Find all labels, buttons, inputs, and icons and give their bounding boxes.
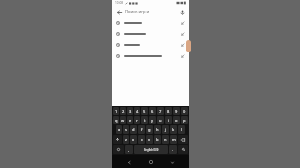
button[interactable]: u xyxy=(157,116,164,124)
staticText: 3 xyxy=(129,109,132,114)
staticText: Поиск игр и приложений xyxy=(125,9,176,15)
staticText: English (US) xyxy=(144,148,159,152)
staticText: 0 xyxy=(183,109,186,114)
staticText: q xyxy=(115,118,118,123)
button[interactable]: r xyxy=(134,116,140,124)
button[interactable]: j xyxy=(162,125,169,134)
button[interactable]: , xyxy=(125,145,133,154)
button[interactable]: Insert suggestion xyxy=(112,28,189,39)
button[interactable]: Recent apps xyxy=(167,157,177,167)
staticText: b xyxy=(156,137,159,142)
button[interactable]: h xyxy=(154,125,161,134)
button[interactable]: Insert suggestion xyxy=(112,17,189,28)
staticText: , xyxy=(128,147,130,152)
button[interactable]: c xyxy=(138,135,145,144)
button[interactable]: Back xyxy=(115,8,123,16)
staticText: n xyxy=(164,137,167,142)
staticText: t xyxy=(144,118,146,123)
button[interactable]: Back xyxy=(124,157,134,167)
staticText: l xyxy=(181,127,183,132)
staticText: k xyxy=(172,127,175,132)
button[interactable]: Поиск игр и приложений xyxy=(125,9,176,15)
button[interactable]: English (US) xyxy=(134,145,168,154)
button[interactable]: w xyxy=(120,116,126,124)
staticText: h xyxy=(156,127,159,132)
button[interactable]: . xyxy=(169,145,177,154)
button[interactable]: s xyxy=(123,125,129,134)
button[interactable]: y xyxy=(149,116,156,124)
button[interactable]: q xyxy=(113,116,119,124)
button[interactable]: 1 xyxy=(113,107,119,115)
other: Insert suggestion xyxy=(181,54,185,58)
staticText: g xyxy=(148,127,151,132)
button[interactable]: Home xyxy=(146,157,156,167)
other: Insert suggestion xyxy=(181,21,185,25)
staticText: 5 xyxy=(143,109,146,114)
button[interactable]: g xyxy=(146,125,153,134)
button[interactable]: e xyxy=(127,116,133,124)
button[interactable]: 0 xyxy=(181,107,188,115)
button[interactable]: n xyxy=(162,135,169,144)
button[interactable]: 3 xyxy=(127,107,133,115)
button[interactable]: k xyxy=(170,125,177,134)
staticText: w xyxy=(121,118,125,123)
staticText: d xyxy=(132,127,135,132)
button[interactable]: 9 xyxy=(173,107,180,115)
staticText: 1 xyxy=(115,109,118,114)
staticText: o xyxy=(175,118,178,123)
staticText: 10:08 xyxy=(115,1,124,5)
button[interactable]: 8 xyxy=(165,107,172,115)
staticText: v xyxy=(148,137,151,142)
button[interactable]: a xyxy=(116,125,122,134)
button[interactable]: 7 xyxy=(157,107,164,115)
button[interactable]: Voice search xyxy=(178,8,186,16)
staticText: f xyxy=(141,127,143,132)
button[interactable]: p xyxy=(181,116,188,124)
staticText: p xyxy=(183,118,186,123)
button[interactable]: b xyxy=(154,135,161,144)
button[interactable]: 5 xyxy=(141,107,148,115)
button[interactable]: backspace xyxy=(178,135,188,144)
staticText: 8 xyxy=(167,109,170,114)
staticText: 2 xyxy=(122,109,125,114)
button[interactable]: search xyxy=(178,145,188,154)
button[interactable]: x xyxy=(130,135,137,144)
button[interactable]: m xyxy=(170,135,177,144)
button[interactable]: 6 xyxy=(149,107,156,115)
staticText: 4 xyxy=(136,109,139,114)
other: Insert suggestion xyxy=(181,43,185,47)
other: Insert suggestion xyxy=(181,32,185,36)
button[interactable]: v xyxy=(146,135,153,144)
button[interactable]: t xyxy=(141,116,148,124)
staticText: u xyxy=(159,118,162,123)
staticText: . xyxy=(172,147,174,152)
button[interactable]: Insert suggestion xyxy=(112,50,189,61)
staticText: 6 xyxy=(151,109,154,114)
button[interactable]: emoji xyxy=(113,145,124,154)
staticText: s xyxy=(125,127,127,132)
staticText: x xyxy=(132,137,135,142)
staticText: m xyxy=(172,137,176,142)
staticText: a xyxy=(118,127,121,132)
staticText: i xyxy=(168,118,170,123)
staticText: z xyxy=(125,137,127,142)
staticText: j xyxy=(165,127,167,132)
button[interactable]: f xyxy=(138,125,145,134)
staticText: 7 xyxy=(159,109,162,114)
staticText: r xyxy=(136,118,138,123)
staticText: e xyxy=(129,118,132,123)
button[interactable]: Insert suggestion xyxy=(112,39,189,50)
staticText: c xyxy=(141,137,143,142)
button[interactable]: 4 xyxy=(134,107,140,115)
button[interactable]: shift xyxy=(113,135,122,144)
staticText: 9 xyxy=(175,109,178,114)
button[interactable]: 2 xyxy=(120,107,126,115)
button[interactable]: i xyxy=(165,116,172,124)
button[interactable]: l xyxy=(178,125,185,134)
button[interactable]: d xyxy=(130,125,137,134)
staticText: y xyxy=(151,118,154,123)
button[interactable]: o xyxy=(173,116,180,124)
button[interactable]: z xyxy=(123,135,129,144)
